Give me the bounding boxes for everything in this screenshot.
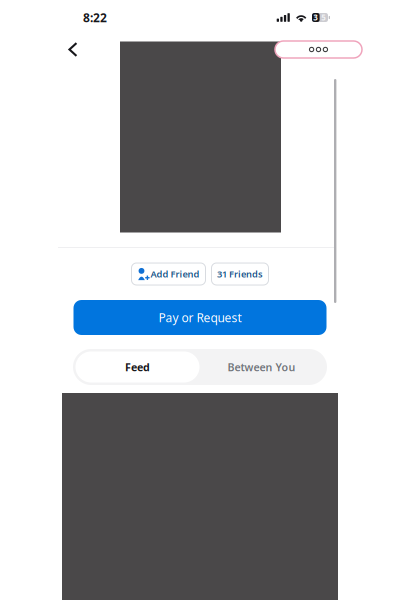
staticText: Add Friend	[150, 268, 199, 280]
button[interactable]: Add Friend	[131, 263, 205, 285]
staticText: 3	[313, 12, 318, 23]
button[interactable]: Feed	[75, 351, 199, 382]
staticText: 5	[321, 12, 326, 23]
staticText: Feed	[125, 360, 150, 374]
staticText: Pay or Request	[158, 309, 241, 325]
staticText: 8:22	[83, 9, 107, 25]
staticText: Between You	[227, 360, 295, 374]
staticText: 31 Friends	[217, 268, 263, 280]
button[interactable]: Between You	[199, 351, 323, 382]
button[interactable]: 31 Friends	[211, 263, 268, 285]
button[interactable]: More options	[275, 41, 362, 58]
button[interactable]: Pay or Request	[73, 300, 326, 335]
button[interactable]: Back	[64, 38, 82, 60]
